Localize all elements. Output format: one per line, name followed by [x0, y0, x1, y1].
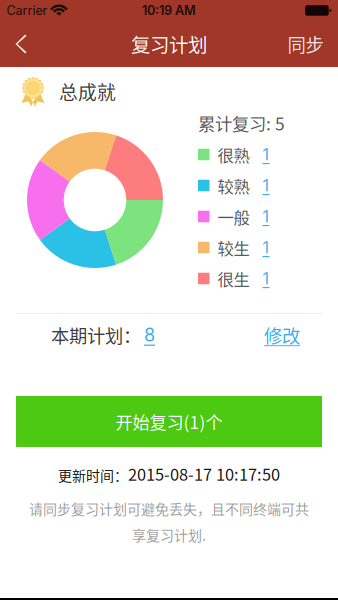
staticText: 同步 — [287, 31, 323, 57]
button[interactable]: 1 — [249, 269, 275, 288]
staticText: 1 — [262, 145, 269, 164]
staticText: Carrier — [6, 3, 47, 18]
staticText: 较生 — [217, 236, 249, 259]
button[interactable]: 同步 — [273, 21, 338, 67]
staticText: 10:19 AM — [142, 3, 196, 18]
staticText: 很熟 — [217, 143, 249, 166]
staticText: 复习计划 — [131, 30, 207, 58]
staticText: 1 — [262, 238, 269, 257]
button[interactable]: 1 — [249, 145, 275, 164]
button[interactable]: Back — [0, 21, 42, 67]
staticText: 总成就 — [59, 78, 116, 105]
staticText: 修改 — [264, 322, 300, 348]
staticText: 更新时间：2015-08-17 10:17:50 — [58, 462, 280, 485]
staticText: 累计复习: 5 — [198, 110, 285, 136]
staticText: 1 — [262, 269, 269, 288]
staticText: 享复习计划. — [132, 524, 206, 545]
button[interactable]: 1 — [249, 176, 275, 195]
button[interactable]: 开始复习(1)个 — [16, 396, 322, 447]
staticText: 本期计划： — [51, 322, 141, 348]
staticText: 一般 — [217, 205, 249, 228]
staticText: 开始复习(1)个 — [115, 409, 222, 434]
button[interactable]: 1 — [249, 238, 275, 257]
button[interactable]: 修改 — [264, 322, 300, 348]
staticText: 8 — [144, 324, 155, 346]
button[interactable]: 8 — [141, 324, 158, 346]
staticText: 1 — [262, 176, 269, 195]
button[interactable]: 1 — [249, 207, 275, 226]
staticText: 较熟 — [217, 174, 249, 197]
staticText: 请同步复习计划可避免丢失，且不同终端可共 — [29, 498, 309, 518]
staticText: 很生 — [217, 267, 249, 290]
staticText: 1 — [262, 207, 269, 226]
